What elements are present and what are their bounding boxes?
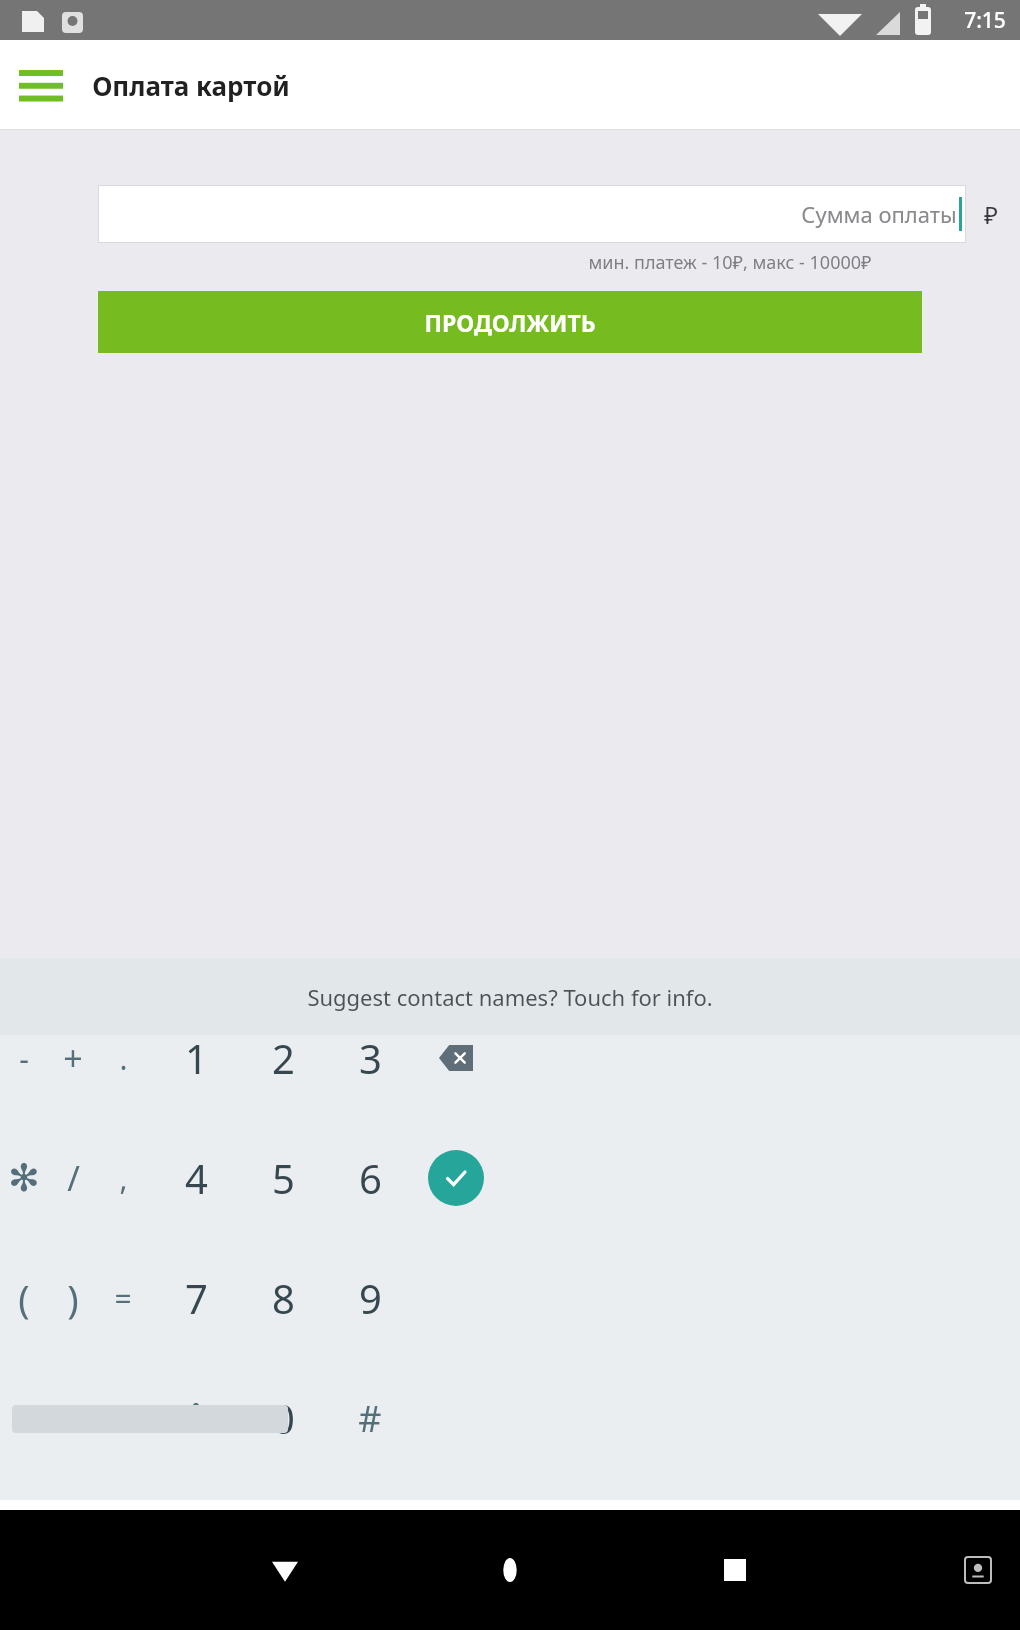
staticText: 2 xyxy=(272,1031,295,1085)
button[interactable]: Сумма оплаты xyxy=(98,185,966,243)
other: Enter xyxy=(428,1150,484,1206)
button[interactable]: 0 xyxy=(241,1388,325,1448)
staticText: Сумма оплаты xyxy=(801,199,957,229)
staticText: 7 xyxy=(185,1271,208,1325)
button[interactable] xyxy=(81,1388,165,1448)
staticText: Оплата картой xyxy=(92,68,290,103)
button[interactable]: , xyxy=(81,1148,165,1208)
staticText: 3 xyxy=(359,1031,382,1085)
staticText: 0 xyxy=(272,1391,295,1445)
button[interactable]: + xyxy=(31,1028,115,1088)
button[interactable]: 2 xyxy=(241,1028,325,1088)
button[interactable]: Open menu xyxy=(10,54,72,116)
staticText: ✻ xyxy=(8,1156,40,1200)
button[interactable]: ) xyxy=(31,1268,115,1328)
staticText: - xyxy=(19,1038,29,1079)
staticText: Suggest contact names? Touch for info. xyxy=(307,982,713,1012)
staticText: # xyxy=(358,1394,382,1443)
staticText: . xyxy=(119,1038,128,1079)
other: Backspace xyxy=(433,1035,479,1081)
button[interactable]: ✻ xyxy=(0,1148,66,1208)
button[interactable]: Hide keyboard xyxy=(946,1538,1010,1602)
staticText: мин. платеж - 10₽, макс - 10000₽ xyxy=(588,250,872,275)
staticText: = xyxy=(114,1278,132,1319)
staticText: + xyxy=(63,1035,83,1081)
button[interactable]: Home xyxy=(475,1535,545,1605)
button[interactable]: Backspace xyxy=(414,1028,498,1088)
button[interactable] xyxy=(31,1388,115,1448)
button[interactable]: 6 xyxy=(328,1148,412,1208)
staticText: ✻ xyxy=(180,1396,212,1440)
staticText: ( xyxy=(18,1272,30,1324)
staticText: / xyxy=(67,1155,80,1201)
button[interactable]: . xyxy=(81,1028,165,1088)
button[interactable]: 3 xyxy=(328,1028,412,1088)
button[interactable]: Back xyxy=(250,1535,320,1605)
staticText: ) xyxy=(67,1272,79,1324)
button[interactable]: - xyxy=(0,1028,66,1088)
staticText: 4 xyxy=(185,1151,208,1205)
button[interactable]: 8 xyxy=(241,1268,325,1328)
staticText: 1 xyxy=(185,1031,208,1085)
button[interactable]: 9 xyxy=(328,1268,412,1328)
button[interactable]: = xyxy=(81,1268,165,1328)
button[interactable]: 7 xyxy=(154,1268,238,1328)
button[interactable]: ✻ xyxy=(154,1388,238,1448)
staticText: ₽ xyxy=(984,198,998,231)
button[interactable]: / xyxy=(31,1148,115,1208)
button[interactable]: ( xyxy=(0,1268,66,1328)
staticText: ПРОДОЛЖИТЬ xyxy=(424,307,596,338)
button[interactable]: # xyxy=(328,1388,412,1448)
staticText: 7:15 xyxy=(964,6,1006,35)
button[interactable]: Enter xyxy=(414,1148,498,1208)
staticText: 8 xyxy=(272,1271,295,1325)
button[interactable]: 1 xyxy=(154,1028,238,1088)
button[interactable]: ПРОДОЛЖИТЬ xyxy=(98,291,922,353)
staticText: 6 xyxy=(359,1151,382,1205)
button[interactable]: 4 xyxy=(154,1148,238,1208)
staticText: , xyxy=(119,1158,128,1199)
button[interactable]: 5 xyxy=(241,1148,325,1208)
staticText: 9 xyxy=(359,1271,382,1325)
button[interactable]: Suggest contact names? Touch for info. xyxy=(0,958,1020,1035)
staticText: 5 xyxy=(272,1151,295,1205)
button[interactable] xyxy=(0,1388,66,1448)
button[interactable]: Recent apps xyxy=(700,1535,770,1605)
